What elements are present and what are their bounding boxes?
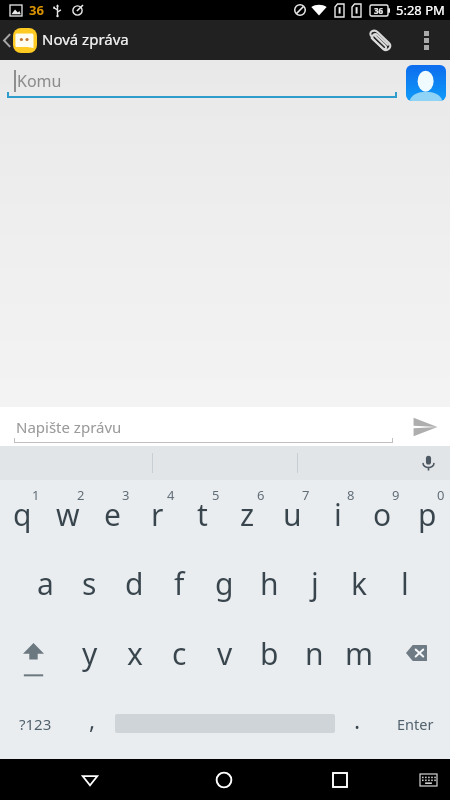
staticText: 9 (392, 486, 400, 504)
button[interactable]: Recents (318, 759, 362, 800)
staticText: w (56, 494, 80, 535)
button[interactable]: 9 (360, 480, 405, 549)
button[interactable]: d (112, 549, 157, 618)
staticText: u (283, 494, 302, 535)
staticText: Napište zprávu (16, 417, 122, 437)
staticText: y (82, 633, 98, 674)
staticText: Nová zpráva (42, 29, 129, 49)
button[interactable]: Switch keyboard (412, 764, 444, 796)
staticText: x (127, 633, 143, 674)
button[interactable]: b (247, 618, 292, 688)
button[interactable]: 4 (135, 480, 180, 549)
button[interactable]: s (67, 549, 112, 618)
button[interactable]: 0 (405, 480, 450, 549)
button[interactable]: Voice input (414, 449, 442, 477)
staticText: a (37, 563, 54, 604)
button[interactable]: Send (406, 410, 444, 444)
button[interactable]: f (157, 549, 202, 618)
staticText: j (311, 563, 319, 604)
staticText: 5 (212, 486, 220, 504)
button[interactable]: 8 (315, 480, 360, 549)
button[interactable]: Pick contact (406, 65, 446, 101)
staticText: i (334, 494, 342, 535)
staticText: 2 (77, 486, 85, 504)
staticText: n (305, 633, 324, 674)
staticText: d (125, 563, 144, 604)
staticText: v (217, 633, 233, 674)
staticText: f (174, 563, 185, 604)
button[interactable]: j (292, 549, 337, 618)
staticText: 4 (167, 486, 175, 504)
staticText: 0 (437, 486, 445, 504)
button[interactable]: h (247, 549, 292, 618)
button[interactable]: Shift (0, 618, 68, 688)
staticText: m (345, 633, 374, 674)
button[interactable]: n (292, 618, 337, 688)
button[interactable]: y (68, 618, 112, 688)
button[interactable]: Attach (362, 20, 406, 60)
staticText: 5:28 PM (396, 1, 445, 19)
button[interactable]: Backspace (382, 618, 450, 688)
button[interactable]: l (382, 549, 427, 618)
staticText: q (13, 494, 32, 535)
staticText: 8 (347, 486, 355, 504)
button[interactable]: More options (406, 20, 450, 60)
button[interactable]: , (70, 688, 115, 759)
button[interactable]: Enter (380, 688, 450, 759)
staticText: 3 (122, 486, 130, 504)
button[interactable]: 3 (90, 480, 135, 549)
staticText: 36 (374, 5, 384, 16)
staticText: ?123 (19, 714, 52, 734)
button[interactable]: 6 (225, 480, 270, 549)
button[interactable]: a (23, 549, 67, 618)
button[interactable]: c (157, 618, 202, 688)
staticText: 36 (29, 1, 44, 19)
staticText: r (151, 494, 164, 535)
button[interactable]: 2 (45, 480, 90, 549)
staticText: b (260, 633, 279, 674)
staticText: l (401, 563, 409, 604)
staticText: g (215, 563, 234, 604)
staticText: c (172, 633, 187, 674)
staticText: o (373, 494, 392, 535)
button[interactable]: Home (202, 759, 246, 800)
staticText: p (418, 494, 437, 535)
staticText: 7 (302, 486, 310, 504)
staticText: 6 (257, 486, 265, 504)
button[interactable]: 5 (180, 480, 225, 549)
staticText: k (351, 563, 368, 604)
button[interactable]: v (202, 618, 247, 688)
staticText: 1 (32, 486, 40, 504)
button[interactable]: ?123 (0, 688, 70, 759)
button[interactable]: 1 (0, 480, 45, 549)
staticText: e (104, 494, 121, 535)
staticText: Enter (397, 714, 434, 734)
staticText: , (89, 704, 96, 735)
staticText: Komu (17, 70, 62, 92)
staticText: z (240, 494, 255, 535)
button[interactable]: m (337, 618, 382, 688)
staticText: t (197, 494, 208, 535)
staticText: s (82, 563, 97, 604)
button[interactable]: Back (68, 759, 112, 800)
staticText: . (354, 704, 361, 735)
button[interactable]: 7 (270, 480, 315, 549)
button[interactable]: x (112, 618, 157, 688)
button[interactable]: k (337, 549, 382, 618)
button[interactable]: . (335, 688, 380, 759)
button[interactable]: Space (115, 688, 335, 759)
staticText: h (260, 563, 279, 604)
button[interactable]: g (202, 549, 247, 618)
button[interactable]: Back (0, 20, 13, 60)
